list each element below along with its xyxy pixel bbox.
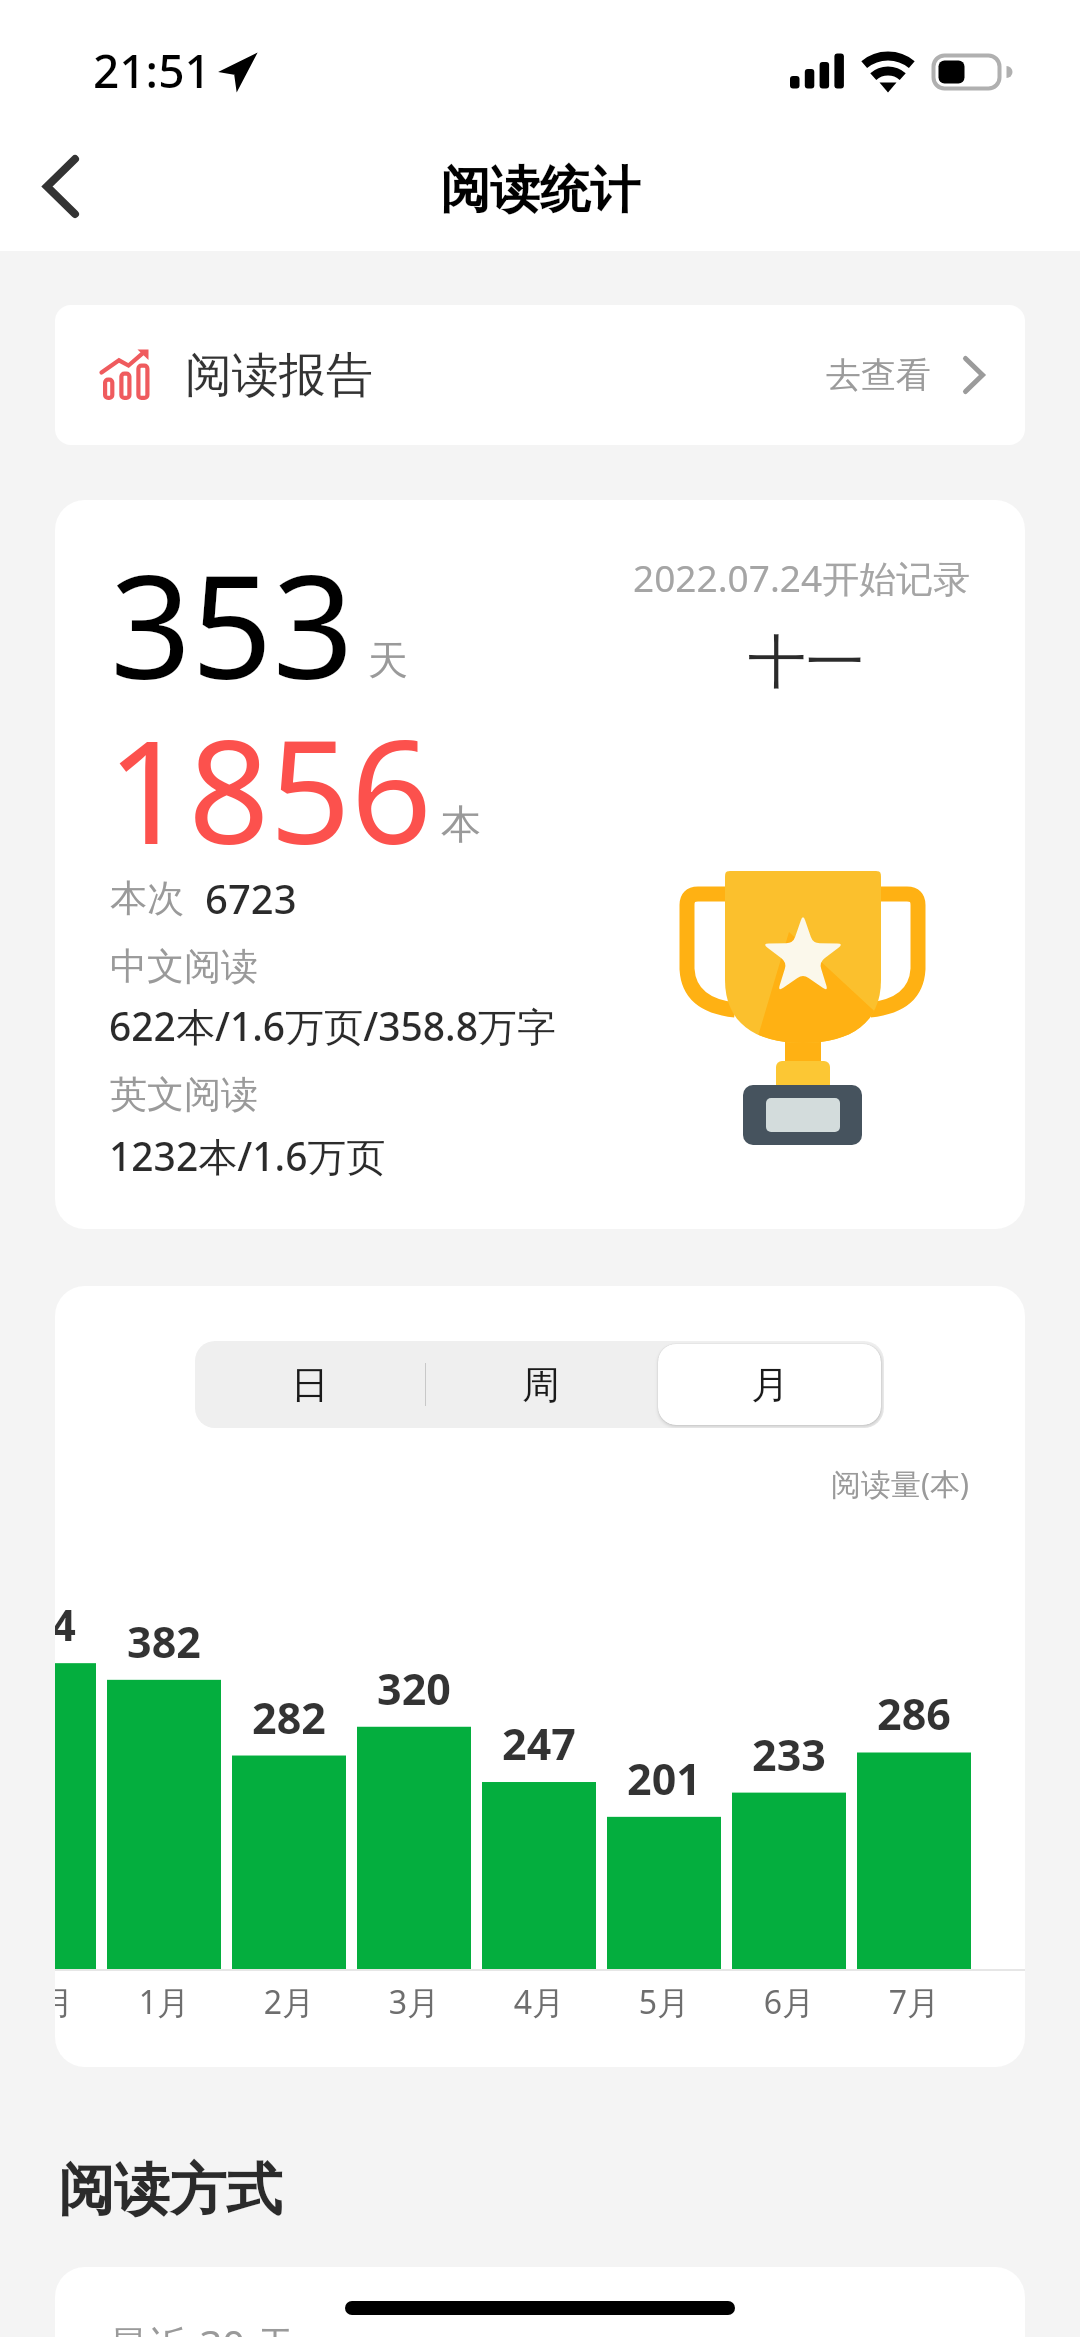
staticText: 阅读量(本) [831, 1463, 969, 1504]
staticText: 404 [55, 1595, 109, 1654]
staticText: 天 [368, 635, 408, 685]
staticText: 12月 [55, 1980, 109, 2024]
staticText: 本次 [110, 875, 184, 922]
staticText: 阅读报告 [185, 346, 373, 405]
staticText: 320 [344, 1659, 484, 1718]
staticText: 本 [441, 799, 481, 849]
button[interactable]: Back [6, 131, 116, 241]
staticText: 5月 [594, 1980, 734, 2024]
staticText: 中文阅读 [110, 943, 258, 990]
staticText: 周 [522, 1361, 560, 1409]
staticText: 286 [844, 1684, 984, 1743]
staticText: 353 [110, 527, 354, 720]
staticText: 十一 [748, 626, 864, 699]
staticText: 2022.07.24开始记录 [633, 552, 971, 603]
button[interactable]: 月 [658, 1344, 881, 1425]
staticText: 1856 [107, 692, 432, 885]
staticText: 2月 [219, 1980, 359, 2024]
staticText: 622本/1.6万页/358.8万字 [109, 999, 557, 1052]
staticText: 247 [469, 1714, 609, 1773]
staticText: 233 [719, 1725, 859, 1784]
staticText: 英文阅读 [110, 1071, 258, 1118]
staticText: 阅读统计 [440, 159, 640, 222]
staticText: 1月 [94, 1980, 234, 2024]
staticText: 4月 [469, 1980, 609, 2024]
staticText: 282 [219, 1688, 359, 1747]
button[interactable]: 最近 30 天 [55, 2267, 1025, 2337]
button[interactable]: 阅读报告 [55, 305, 1025, 445]
staticText: 201 [594, 1749, 734, 1808]
staticText: 6723 [205, 871, 297, 925]
staticText: 最近 30 天 [109, 2317, 296, 2337]
staticText: 382 [94, 1612, 234, 1671]
staticText: 月 [751, 1361, 789, 1409]
staticText: 21:51 [93, 39, 211, 102]
staticText: 日 [291, 1361, 329, 1409]
staticText: 3月 [344, 1980, 484, 2024]
staticText: 1232本/1.6万页 [109, 1129, 386, 1182]
staticText: 去查看 [826, 353, 931, 397]
staticText: 阅读方式 [58, 2155, 282, 2226]
staticText: 6月 [719, 1980, 859, 2024]
button[interactable]: 周 [429, 1344, 652, 1425]
staticText: 7月 [844, 1980, 984, 2024]
button[interactable]: 日 [198, 1344, 422, 1425]
